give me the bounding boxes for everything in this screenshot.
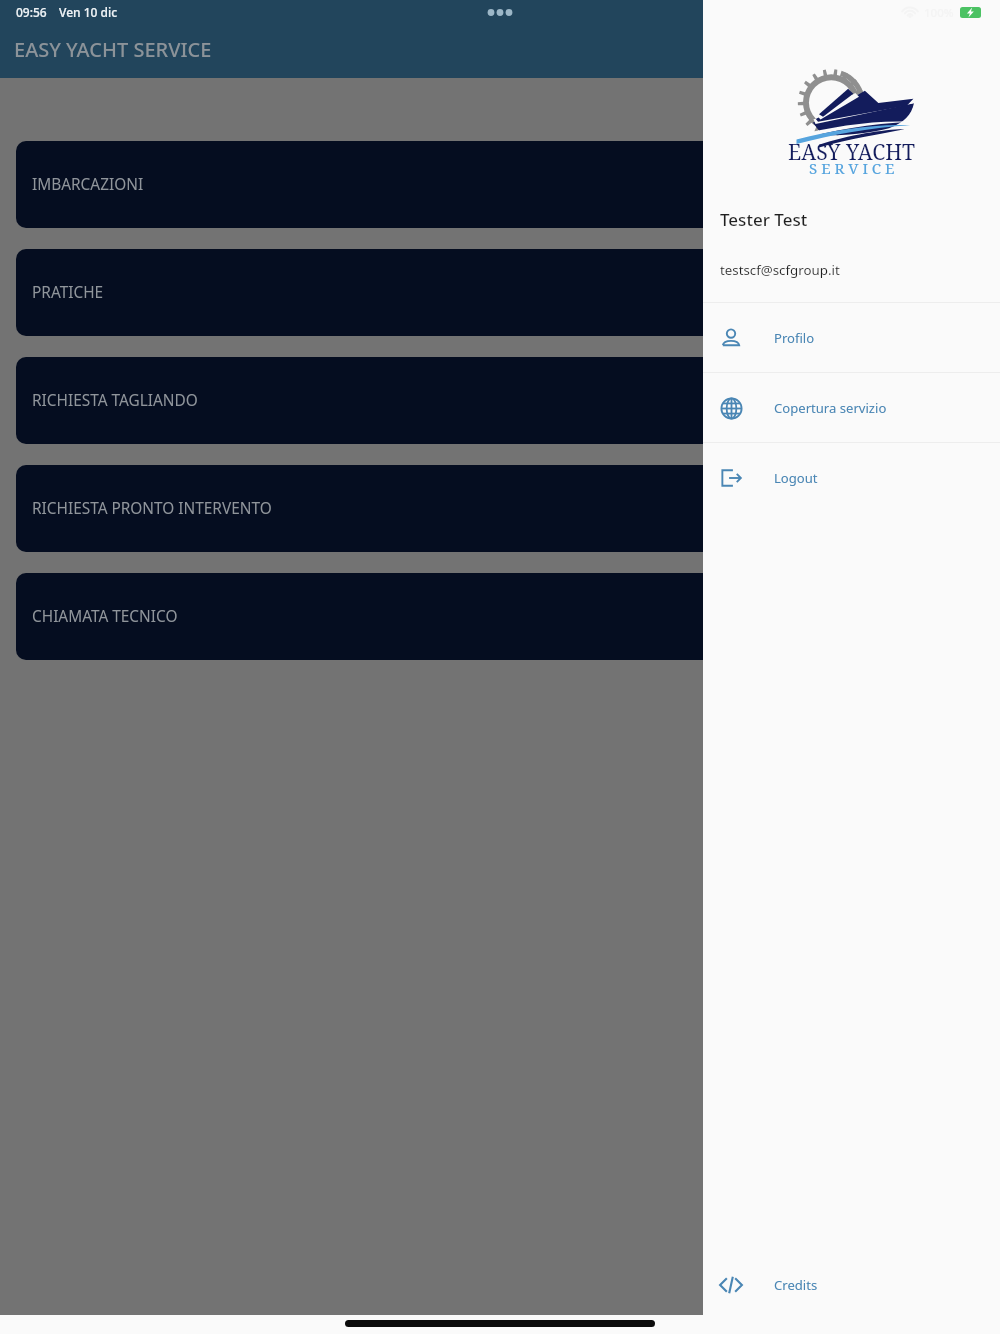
- staticText: RICHIESTA PRONTO INTERVENTO: [32, 498, 272, 519]
- staticText: IMBARCAZIONI: [32, 174, 144, 195]
- button[interactable]: Credits: [703, 1250, 1000, 1319]
- staticText: RICHIESTA TAGLIANDO: [32, 390, 198, 411]
- staticText: CHIAMATA TECNICO: [32, 606, 178, 627]
- staticText: Tester Test: [720, 208, 808, 231]
- staticText: Ven 10 dic: [59, 4, 118, 20]
- staticText: Copertura servizio: [774, 399, 887, 417]
- button[interactable]: Profilo: [703, 303, 1000, 372]
- staticText: EASY YACHT: [788, 137, 916, 166]
- button[interactable]: RICHIESTA TAGLIANDO: [16, 357, 984, 444]
- button[interactable]: RICHIESTA PRONTO INTERVENTO: [16, 465, 984, 552]
- button[interactable]: Copertura servizio: [703, 373, 1000, 442]
- button[interactable]: Logout: [703, 443, 1000, 512]
- staticText: testscf@scfgroup.it: [720, 261, 840, 279]
- staticText: PRATICHE: [32, 282, 104, 303]
- staticText: Profilo: [774, 329, 815, 347]
- button[interactable]: IMBARCAZIONI: [16, 141, 984, 228]
- staticText: EASY YACHT SERVICE: [14, 36, 212, 63]
- staticText: S E R V I C E: [809, 158, 895, 179]
- staticText: 09:56: [16, 4, 47, 20]
- button[interactable]: CHIAMATA TECNICO: [16, 573, 984, 660]
- button[interactable]: PRATICHE: [16, 249, 984, 336]
- staticText: Logout: [774, 469, 818, 487]
- staticText: Credits: [774, 1276, 818, 1294]
